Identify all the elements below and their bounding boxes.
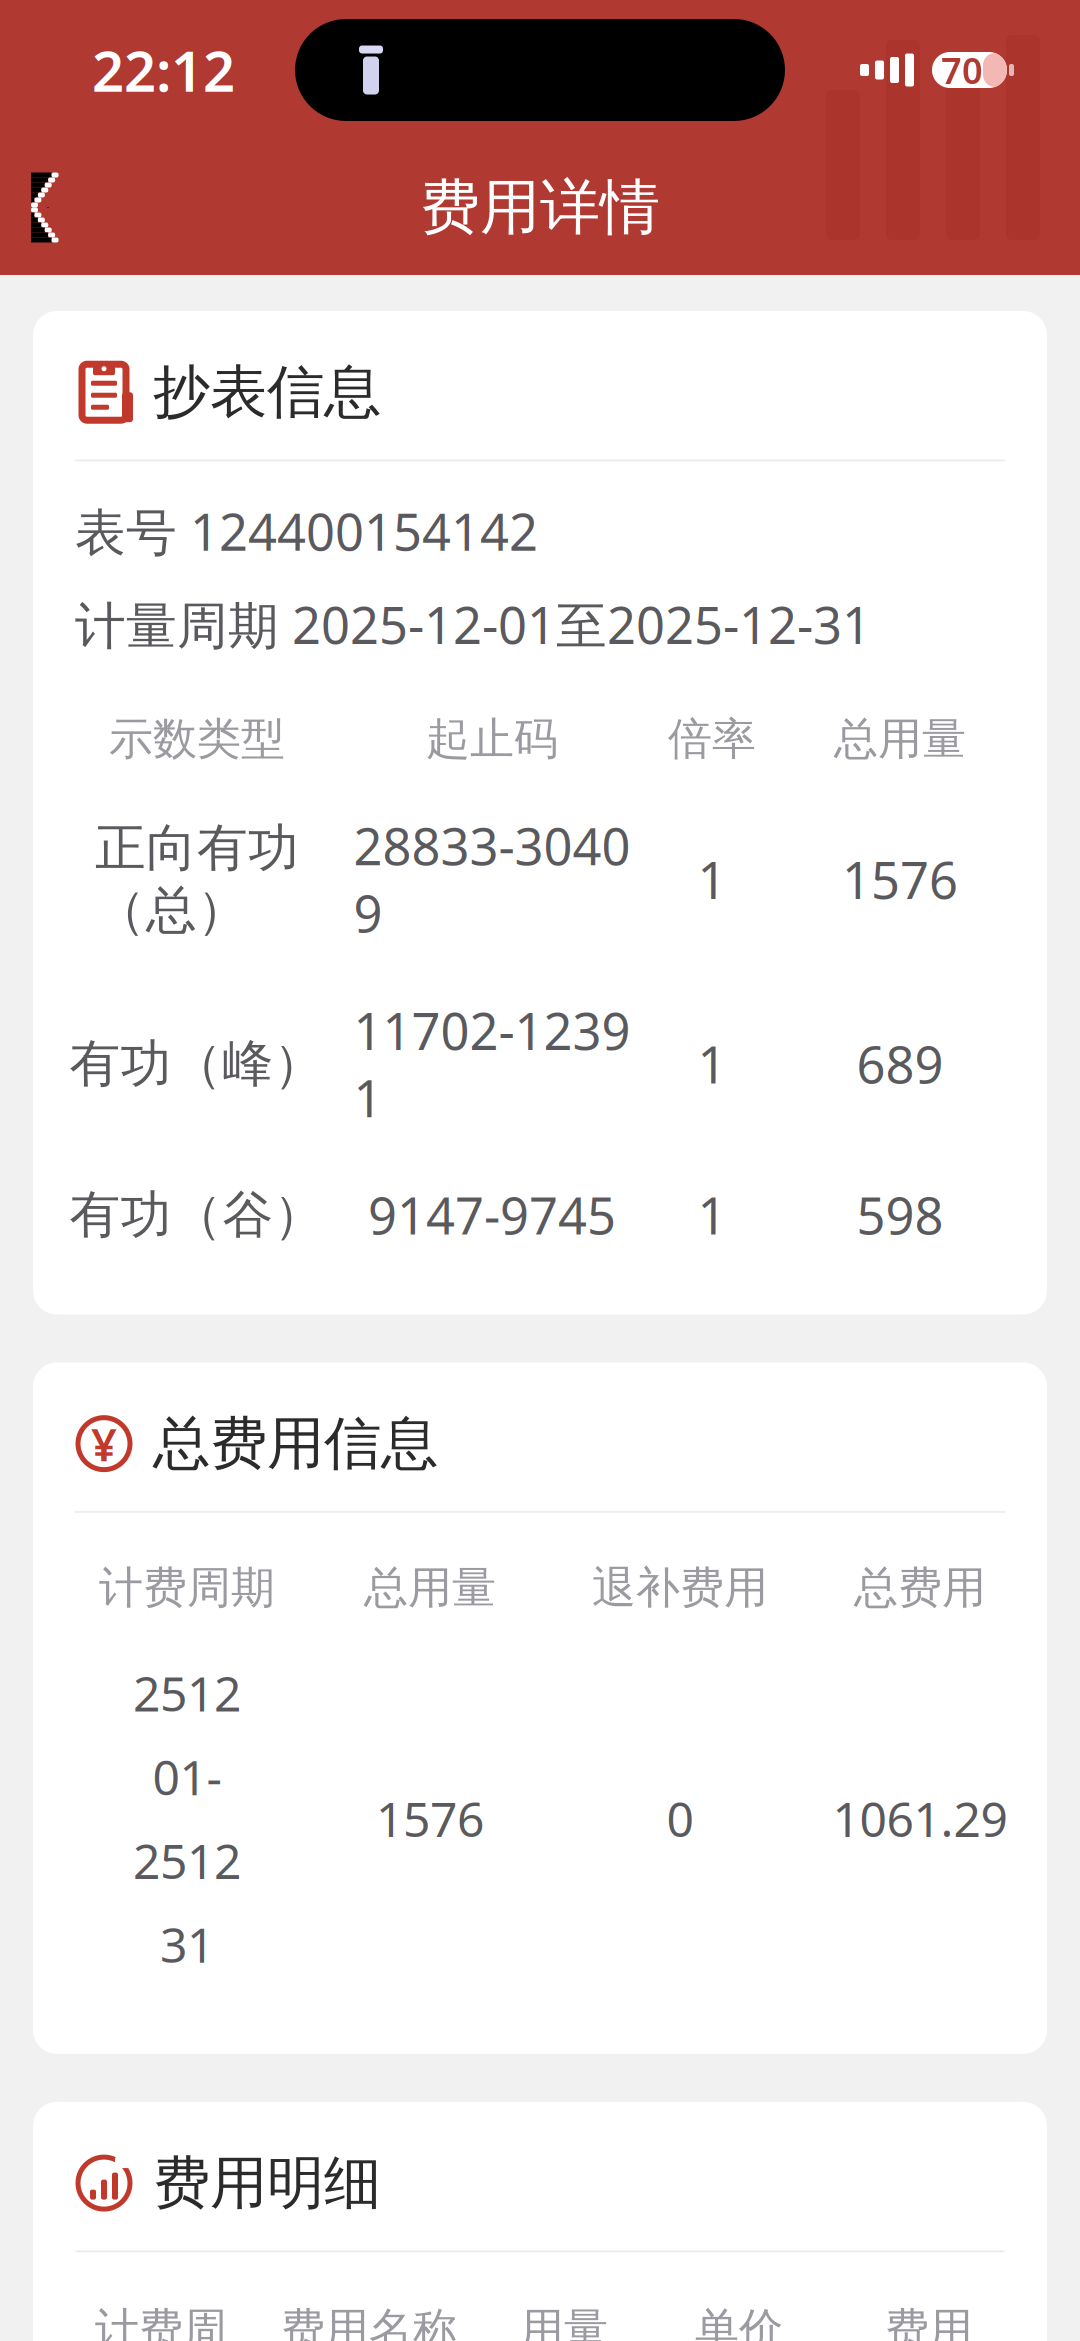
button[interactable]: 返回 [0,152,96,262]
staticText: 689 [856,1030,943,1097]
staticText: 1 [697,846,726,913]
staticText: 计费周期 [99,1561,275,1615]
staticText: 起止码 [426,712,558,766]
staticText: 70 [941,46,983,94]
staticText: 抄表信息 [153,357,381,427]
staticText: 1576 [842,846,958,913]
staticText: 计量周期 2025-12-01至2025-12-31 [75,591,871,658]
staticText: 示数类型 [109,712,285,766]
staticText: 2512 [133,1828,241,1892]
staticText: 1576 [376,1786,484,1850]
staticText: 有功（峰） [69,1033,324,1095]
staticText: 1 [697,1030,726,1097]
staticText: 11702-12391 [353,997,630,1131]
staticText: 598 [856,1181,943,1248]
staticText: 费用名称 [281,2302,457,2341]
staticText: 费用详情 [420,171,660,244]
staticText: 倍率 [668,712,756,766]
staticText: 单价 [695,2302,783,2341]
staticText: 0 [666,1786,693,1850]
staticText: 22:12 [92,33,235,107]
staticText: 费用 [885,2302,973,2341]
staticText: 费用明细 [153,2148,381,2218]
staticText: 9147-9745 [368,1181,616,1248]
staticText: 总用量 [834,712,966,766]
staticText: 表号 124400154142 [75,497,538,565]
staticText: ¥ [91,1414,117,1474]
staticText: 总费用 [854,1561,986,1615]
staticText: 总费用信息 [153,1408,438,1479]
staticText: 2512 [133,1661,241,1725]
staticText: 总用量 [364,1561,496,1615]
staticText: 31 [160,1912,214,1976]
staticText: 退补费用 [592,1561,768,1615]
staticText: 28833-30409 [353,812,630,947]
staticText: 正向有功（总） [95,817,299,942]
staticText: 01- [152,1745,221,1808]
staticText: 有功（谷） [69,1184,324,1246]
staticText: 1061.29 [832,1786,1007,1850]
staticText: 1 [697,1181,726,1248]
staticText: 计费周 [95,2302,227,2341]
staticText: 用量 [520,2302,608,2341]
